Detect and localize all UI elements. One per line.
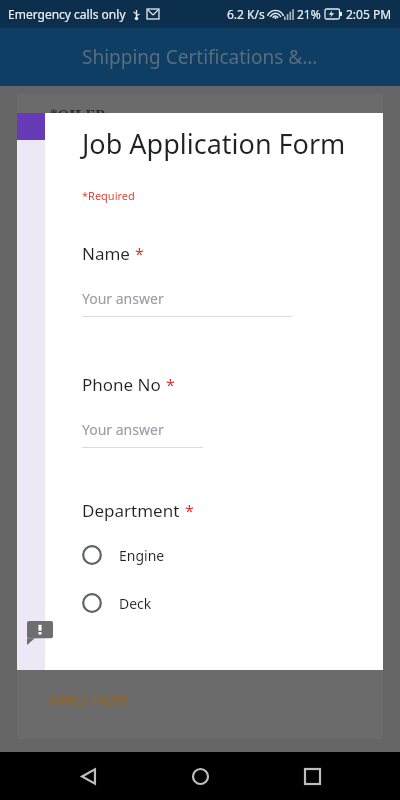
staticText: *	[135, 243, 144, 265]
staticText: 2:05 PM	[346, 6, 392, 22]
staticText: 21%	[297, 6, 321, 22]
button[interactable]: Home	[176, 752, 224, 800]
staticText: Engine	[119, 546, 165, 565]
staticText: Name	[82, 242, 130, 265]
staticText: *	[166, 374, 175, 396]
button[interactable]: Your answer	[82, 420, 203, 448]
staticText: Phone No	[82, 373, 161, 396]
button[interactable]: APPLY NOW	[33, 684, 144, 715]
staticText: Shipping Certifications &…	[82, 44, 318, 70]
staticText: Job Application Form	[82, 125, 346, 162]
button[interactable]: Recent apps	[288, 752, 336, 800]
staticText: Emergency calls only	[8, 6, 126, 22]
button[interactable]: Your answer	[82, 289, 292, 317]
staticText: *	[185, 500, 194, 522]
staticText: APPLY NOW	[49, 690, 128, 709]
staticText: Your answer	[82, 420, 164, 439]
button[interactable]: Send feedback	[27, 621, 53, 645]
staticText: *OILER	[50, 104, 106, 124]
staticText: Deck	[119, 594, 152, 613]
staticText: Department	[82, 499, 180, 522]
staticText: 6.2 K/s	[227, 6, 265, 22]
button[interactable]: Engine	[82, 545, 189, 565]
button[interactable]: Back	[64, 752, 112, 800]
button[interactable]: Deck	[82, 593, 176, 613]
staticText: Your answer	[82, 289, 164, 308]
staticText: *Required	[82, 188, 135, 203]
